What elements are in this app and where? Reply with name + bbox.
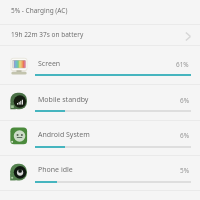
button[interactable]: 5% - Charging (AC) [0,0,200,24]
staticText: 19h 22m 37s on battery [11,30,84,39]
other: Battery history details [185,32,191,41]
button[interactable]: Mobile standby [0,84,200,120]
staticText: Android System [38,130,90,140]
button[interactable]: 19h 22m 37s on battery [0,24,200,45]
staticText: 6% [180,131,189,140]
staticText: Mobile standby [38,95,89,105]
staticText: 61% [176,60,189,69]
button[interactable]: Phone idle [0,155,200,190]
staticText: Screen [38,59,61,69]
staticText: 6% [180,96,189,105]
button[interactable]: Screen [0,45,200,84]
staticText: 5% - Charging (AC) [11,6,68,15]
staticText: Phone idle [38,165,73,175]
staticText: 5% [180,166,189,175]
button[interactable]: Android System [0,120,200,155]
